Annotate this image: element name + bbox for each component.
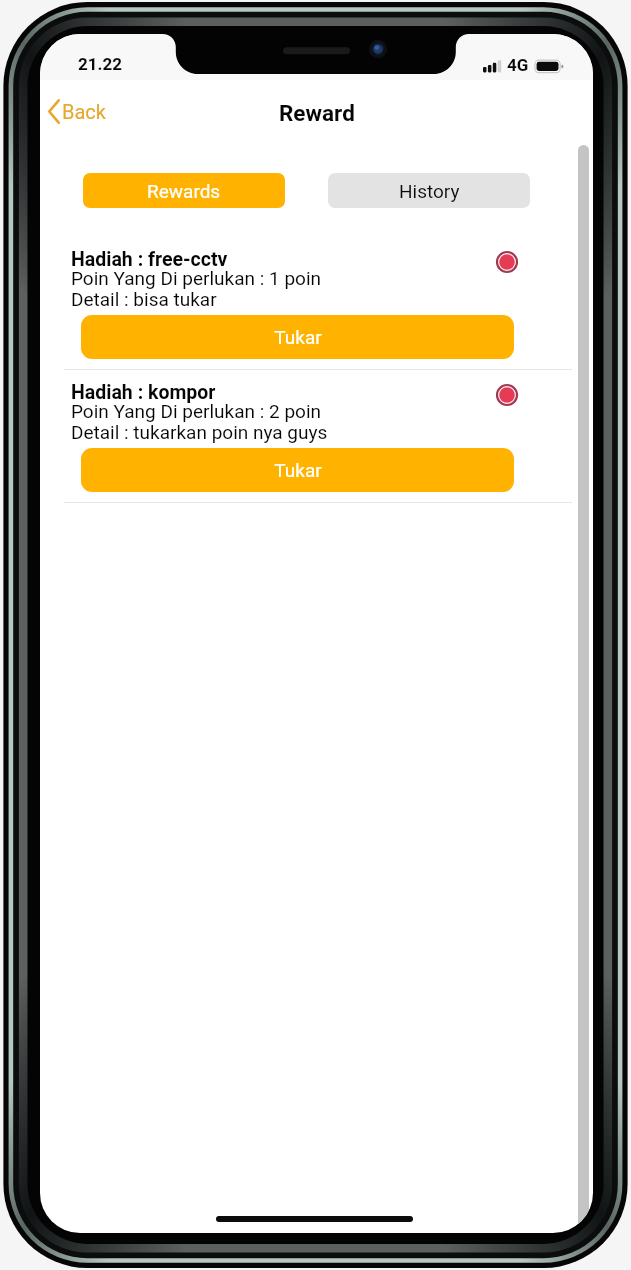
button[interactable]: Select reward [496, 251, 518, 273]
staticText: Hadiah : free-cctv [71, 248, 228, 271]
staticText: History [399, 180, 460, 202]
staticText: Rewards [147, 180, 221, 202]
button[interactable]: Tukar [81, 448, 514, 492]
staticText: Detail : bisa tukar [71, 288, 217, 310]
staticText: Tukar [274, 326, 322, 348]
button[interactable]: Back [43, 94, 111, 129]
staticText: Detail : tukarkan poin nya guys [71, 421, 328, 443]
staticText: 4G [507, 55, 529, 75]
button[interactable]: Tukar [81, 315, 514, 359]
button[interactable]: Rewards [83, 173, 285, 208]
button[interactable]: History [328, 173, 530, 208]
staticText: Tukar [274, 459, 322, 481]
staticText: 21.22 [78, 54, 122, 74]
staticText: Poin Yang Di perlukan : 1 poin [71, 267, 322, 289]
staticText: Reward [279, 100, 355, 126]
staticText: Hadiah : kompor [71, 381, 216, 404]
button[interactable]: Select reward [496, 384, 518, 406]
staticText: Back [62, 100, 106, 123]
staticText: Poin Yang Di perlukan : 2 poin [71, 400, 322, 422]
